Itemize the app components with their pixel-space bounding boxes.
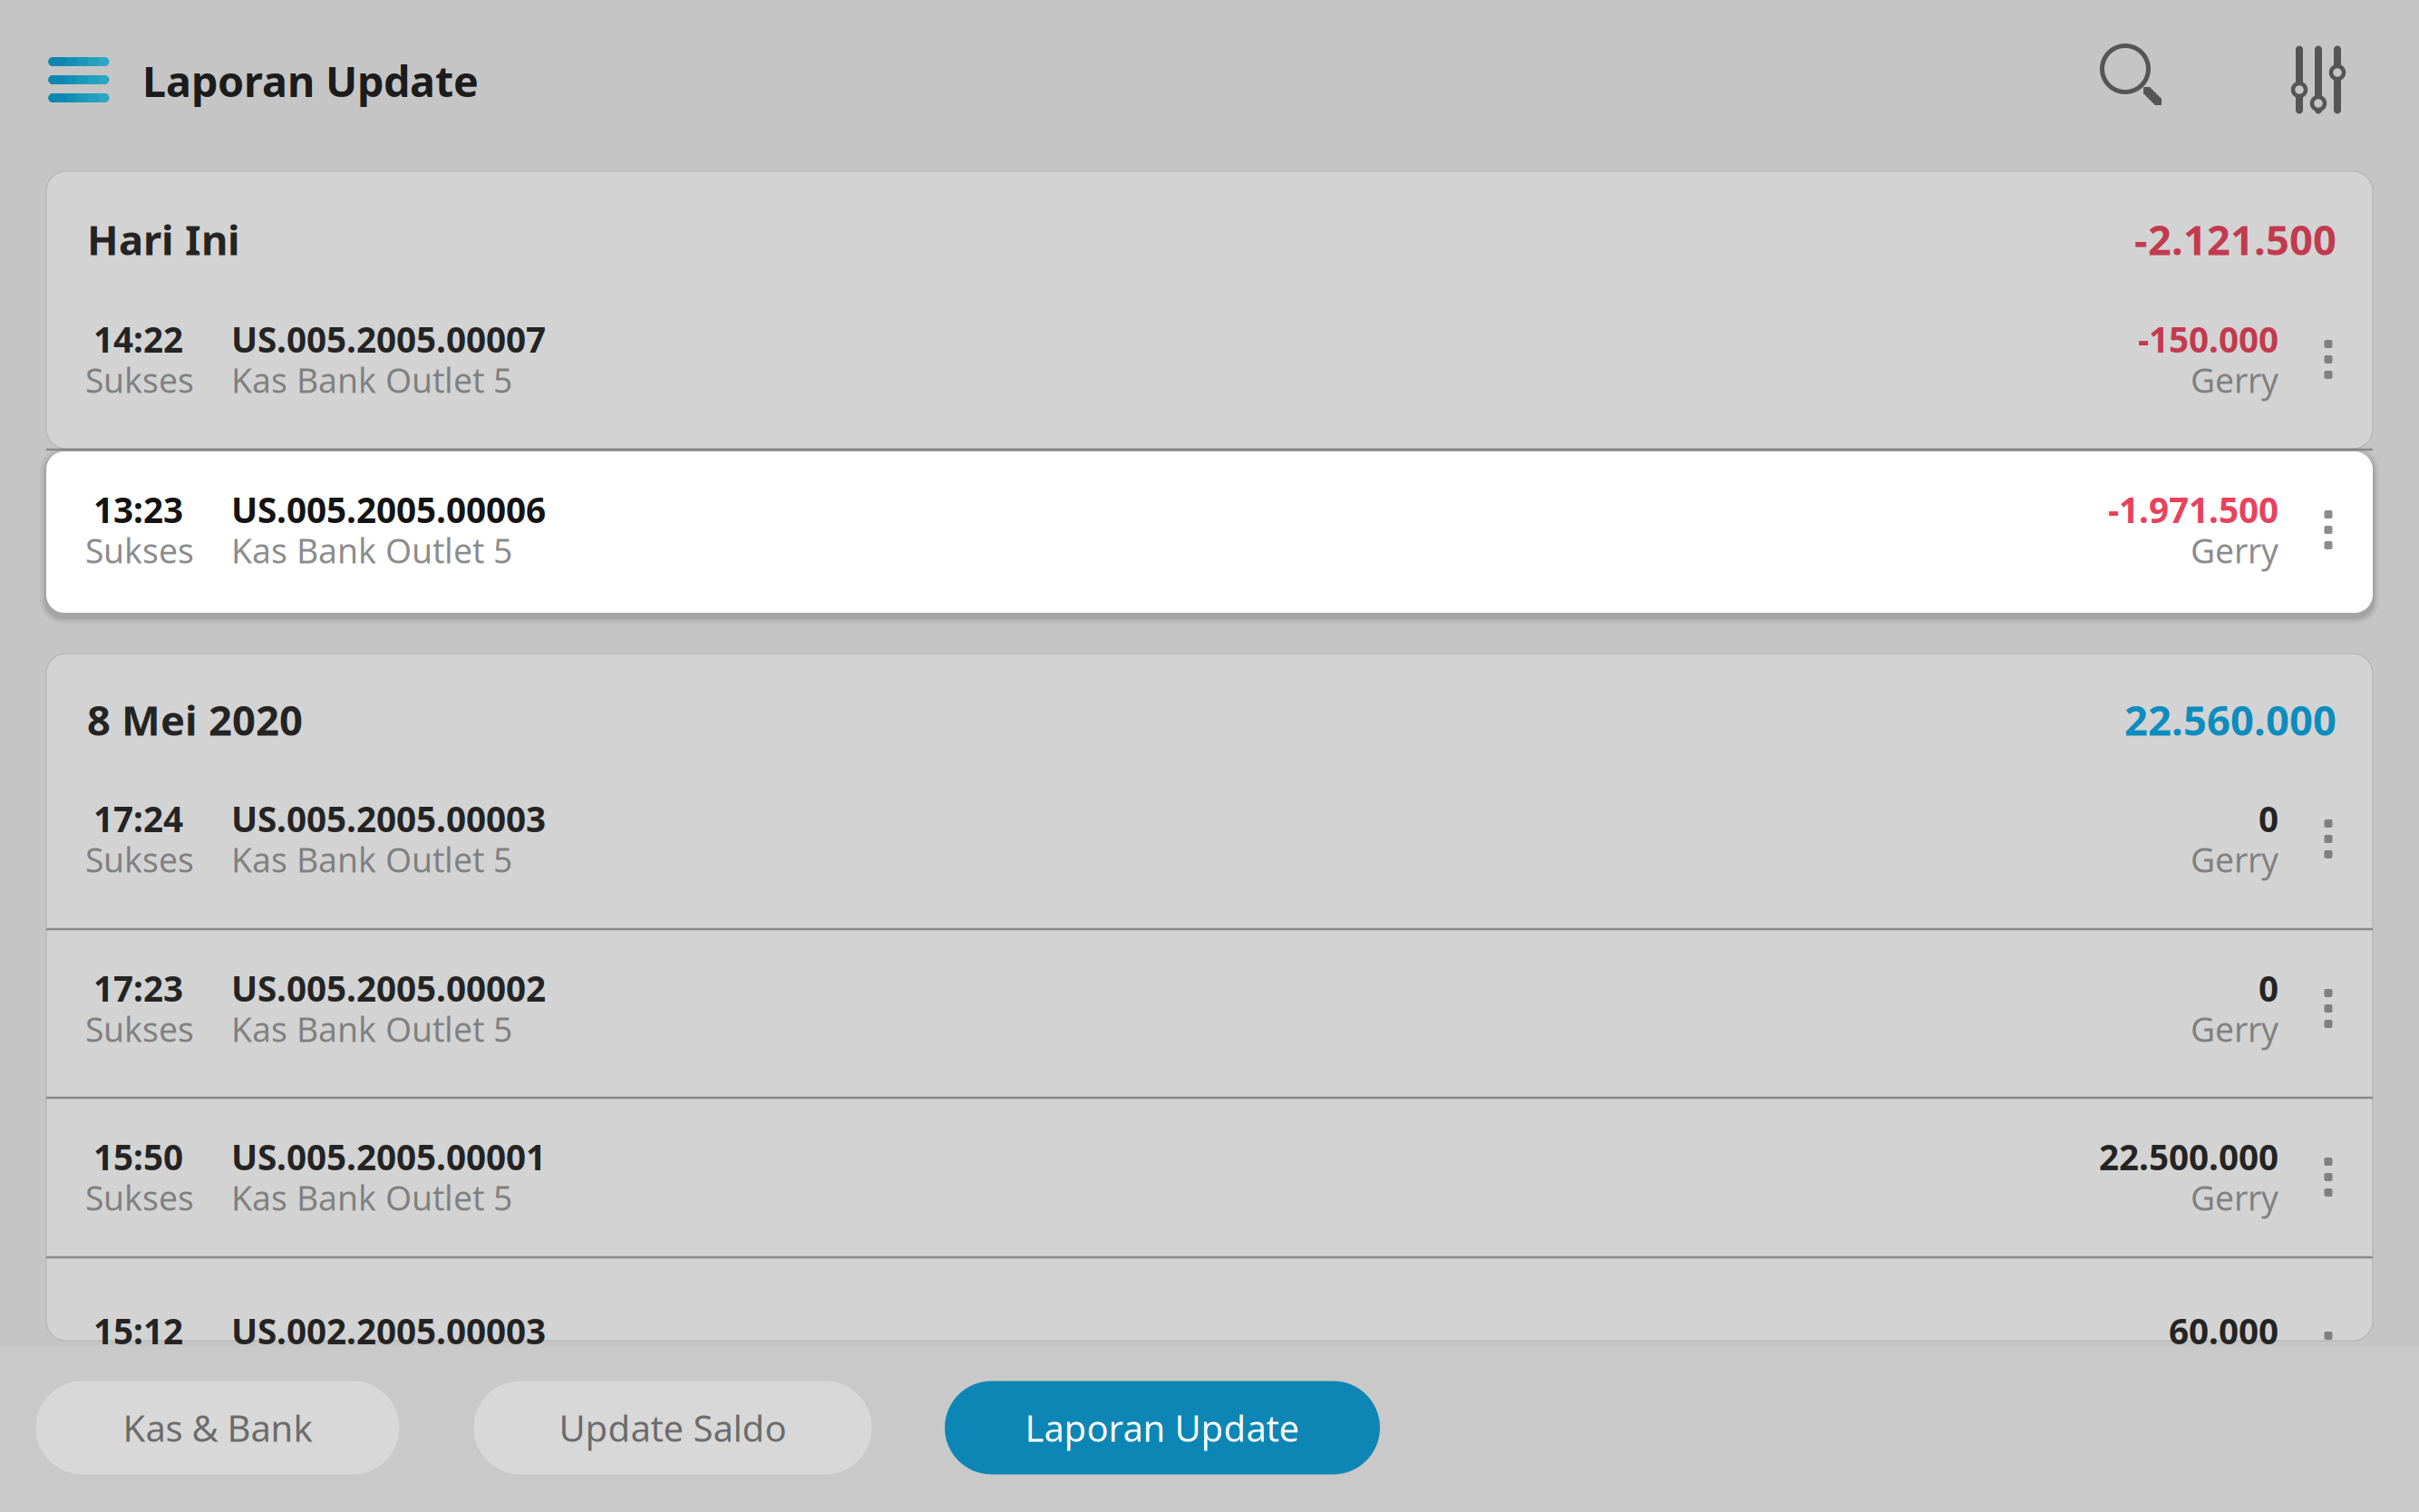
staticText: US.005.2005.00006 <box>231 486 546 533</box>
staticText: Update Saldo <box>559 1404 787 1452</box>
staticText: 14:22 <box>93 316 183 362</box>
staticText: Gerry <box>2191 1175 2278 1220</box>
staticText: Gerry <box>2191 528 2278 573</box>
staticText: Kas Bank Outlet 5 <box>231 837 512 882</box>
staticText: 17:24 <box>93 795 183 842</box>
staticText: US.005.2005.00003 <box>231 795 546 842</box>
staticText: 0 <box>2259 795 2278 842</box>
staticText: Laporan Update <box>1025 1404 1300 1452</box>
staticText: Laporan Update <box>142 53 479 109</box>
staticText: Gerry <box>2191 837 2278 882</box>
staticText: 17:23 <box>93 965 183 1011</box>
staticText: Kas Bank Outlet 5 <box>231 528 512 573</box>
staticText: Sukses <box>85 1349 194 1394</box>
staticText: Kas Bank Outlet 5 <box>231 1006 512 1051</box>
staticText: Kas Bank Outlet 5 <box>231 1349 512 1394</box>
staticText: 15:50 <box>93 1133 183 1180</box>
button[interactable]: Update Saldo <box>474 1381 872 1474</box>
staticText: 15:12 <box>93 1307 183 1354</box>
button[interactable]: 14:22 <box>46 308 2373 415</box>
button[interactable]: 17:23 <box>46 957 2373 1064</box>
button[interactable]: Kas & Bank <box>36 1381 399 1474</box>
staticText: Hari Ini <box>87 212 240 267</box>
staticText: US.002.2005.00003 <box>231 1307 546 1354</box>
button[interactable]: Laporan Update <box>945 1381 1380 1474</box>
staticText: 60.000 <box>2169 1307 2278 1354</box>
staticText: -2.121.500 <box>2134 212 2336 267</box>
staticText: Sukses <box>85 357 194 402</box>
staticText: Kas Bank Outlet 5 <box>231 357 512 402</box>
staticText: Sukses <box>85 1175 194 1220</box>
staticText: 13:23 <box>93 486 183 533</box>
staticText: -150.000 <box>2138 316 2278 362</box>
button[interactable]: 17:24 <box>46 788 2373 895</box>
button[interactable]: Search <box>2091 34 2174 118</box>
staticText: Kas & Bank <box>123 1404 312 1452</box>
staticText: Sukses <box>85 1006 194 1051</box>
button[interactable]: Menu <box>29 30 129 130</box>
staticText: Gerry <box>2191 357 2278 402</box>
staticText: Sukses <box>85 528 194 573</box>
staticText: Kas Bank Outlet 5 <box>231 1175 512 1220</box>
staticText: -1.971.500 <box>2108 486 2278 533</box>
button[interactable]: Filter <box>2291 46 2346 114</box>
staticText: 8 Mei 2020 <box>87 692 303 747</box>
staticText: 22.500.000 <box>2099 1133 2278 1180</box>
staticText: US.005.2005.00002 <box>231 965 546 1011</box>
staticText: Gerry <box>2191 1006 2278 1051</box>
staticText: 22.560.000 <box>2124 692 2336 747</box>
button[interactable]: 15:12 <box>46 1300 2373 1407</box>
staticText: 0 <box>2259 965 2278 1011</box>
staticText: US.005.2005.00001 <box>231 1133 546 1180</box>
button[interactable]: 13:23 <box>46 479 2373 586</box>
staticText: US.005.2005.00007 <box>231 316 546 362</box>
staticText: Sukses <box>85 837 194 882</box>
button[interactable]: 15:50 <box>46 1126 2373 1233</box>
